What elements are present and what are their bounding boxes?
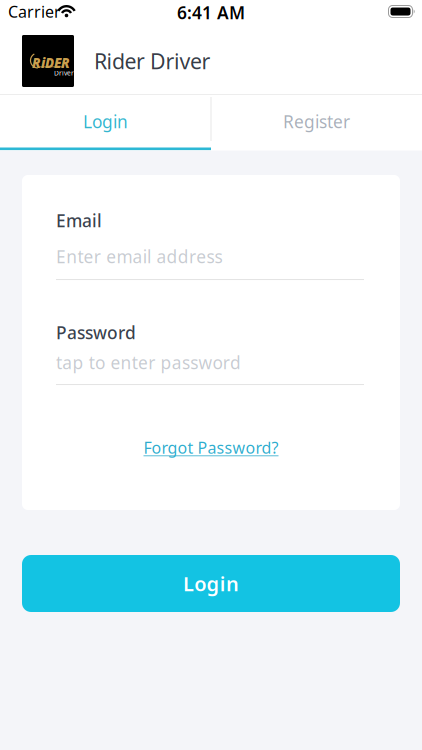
staticText: tap to enter password	[56, 351, 241, 374]
staticText: Login	[183, 570, 239, 597]
staticText: Enter email address	[56, 245, 223, 268]
staticText: Rider Driver	[94, 47, 210, 75]
button[interactable]: Register	[211, 95, 422, 148]
staticText: 6:41 AM	[177, 1, 245, 24]
button[interactable]: Forgot Password?	[22, 437, 400, 458]
staticText: Email	[56, 209, 102, 232]
button[interactable]: Login	[22, 555, 400, 612]
button[interactable]: Email	[56, 209, 364, 280]
staticText: Password	[56, 321, 136, 344]
staticText: Forgot Password?	[143, 437, 278, 458]
staticText: RiDER	[32, 54, 70, 72]
staticText: Register	[283, 110, 350, 133]
staticText: Carrier	[8, 1, 61, 22]
button[interactable]: Password	[56, 321, 364, 385]
staticText: Driver	[54, 68, 74, 77]
button[interactable]: Login	[0, 95, 211, 148]
staticText: Login	[83, 110, 128, 133]
